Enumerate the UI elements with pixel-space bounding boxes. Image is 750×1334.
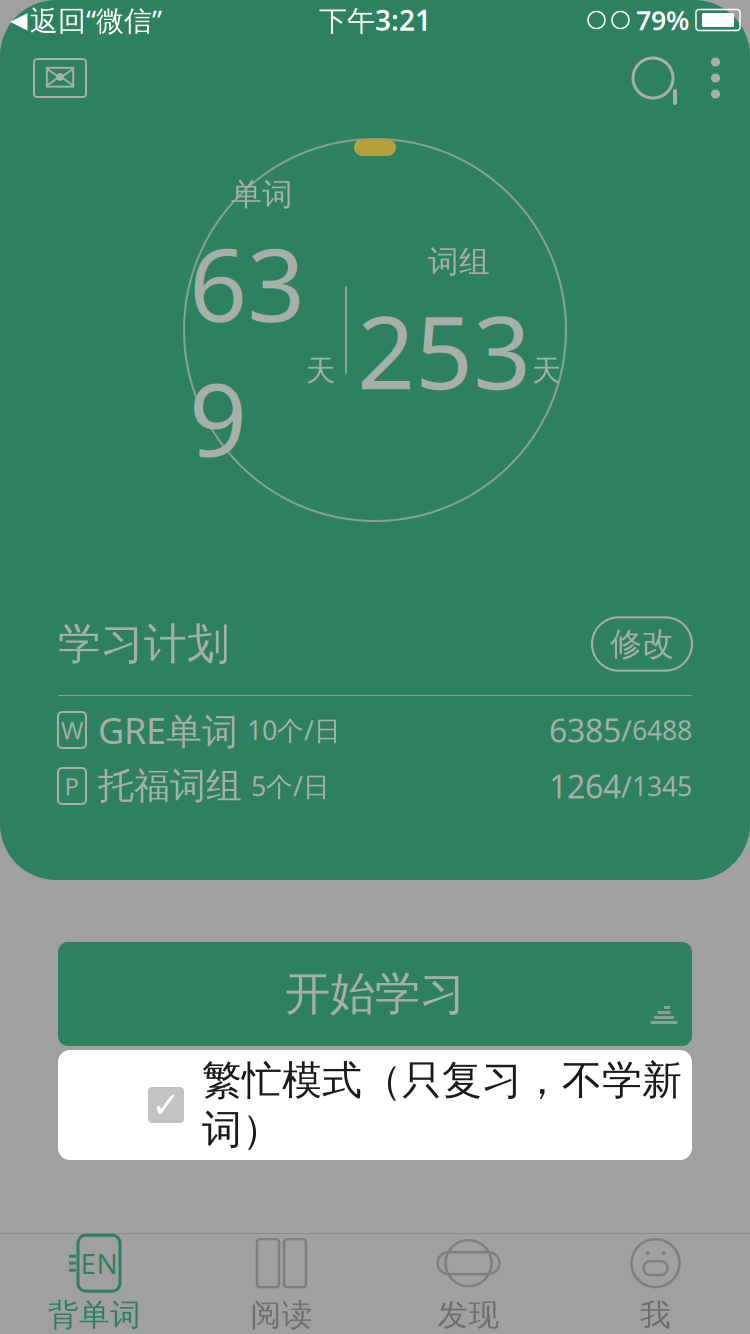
staticText: 开始学习	[285, 966, 465, 1022]
button[interactable]: More options	[689, 45, 742, 110]
staticText: 天	[532, 353, 561, 389]
staticText: 1345	[632, 768, 692, 804]
staticText: 639	[189, 215, 305, 484]
button[interactable]: 开始学习	[58, 942, 692, 1046]
button[interactable]: 我	[562, 1234, 749, 1334]
staticText: 单词	[231, 176, 293, 213]
staticText: W	[61, 714, 83, 746]
button[interactable]: 修改	[592, 617, 692, 671]
staticText: 学习计划	[58, 618, 230, 670]
staticText: 背单词	[48, 1296, 141, 1334]
staticText: /	[621, 710, 632, 749]
staticText: 阅读	[250, 1296, 312, 1334]
staticText: 10个/日	[247, 712, 341, 748]
staticText: P	[64, 770, 79, 802]
button[interactable]: EN	[1, 1234, 188, 1334]
staticText: 6385	[549, 709, 621, 751]
button[interactable]: Search	[617, 42, 689, 114]
button[interactable]: Messages	[22, 45, 98, 111]
staticText: 词组	[428, 243, 490, 281]
staticText: EN	[80, 1245, 117, 1282]
staticText: 繁忙模式（只复习，不学新词）	[202, 1056, 682, 1154]
button[interactable]: P	[0, 758, 750, 814]
staticText: 5个/日	[251, 768, 330, 804]
staticText: 下午3:21	[319, 1, 431, 39]
button[interactable]: ✓	[58, 1050, 692, 1160]
staticText: 修改	[610, 624, 674, 664]
staticText: /	[621, 766, 632, 805]
staticText: ◀	[10, 7, 27, 33]
button[interactable]: 阅读	[188, 1234, 375, 1334]
button[interactable]: W	[0, 702, 750, 758]
staticText: 253	[357, 283, 531, 417]
staticText: 6488	[632, 712, 692, 748]
staticText: 发现	[437, 1296, 499, 1334]
staticText: 79%	[636, 2, 689, 38]
button[interactable]: 发现	[375, 1234, 562, 1334]
staticText: 1264	[549, 765, 621, 807]
staticText: ✉	[43, 55, 77, 101]
staticText: 天	[306, 353, 335, 389]
staticText: ✓	[151, 1085, 180, 1125]
staticText: 返回“微信”	[30, 1, 162, 39]
staticText: GRE单词	[98, 706, 238, 754]
staticText: 我	[640, 1296, 671, 1334]
staticText: 托福词组	[98, 764, 242, 808]
